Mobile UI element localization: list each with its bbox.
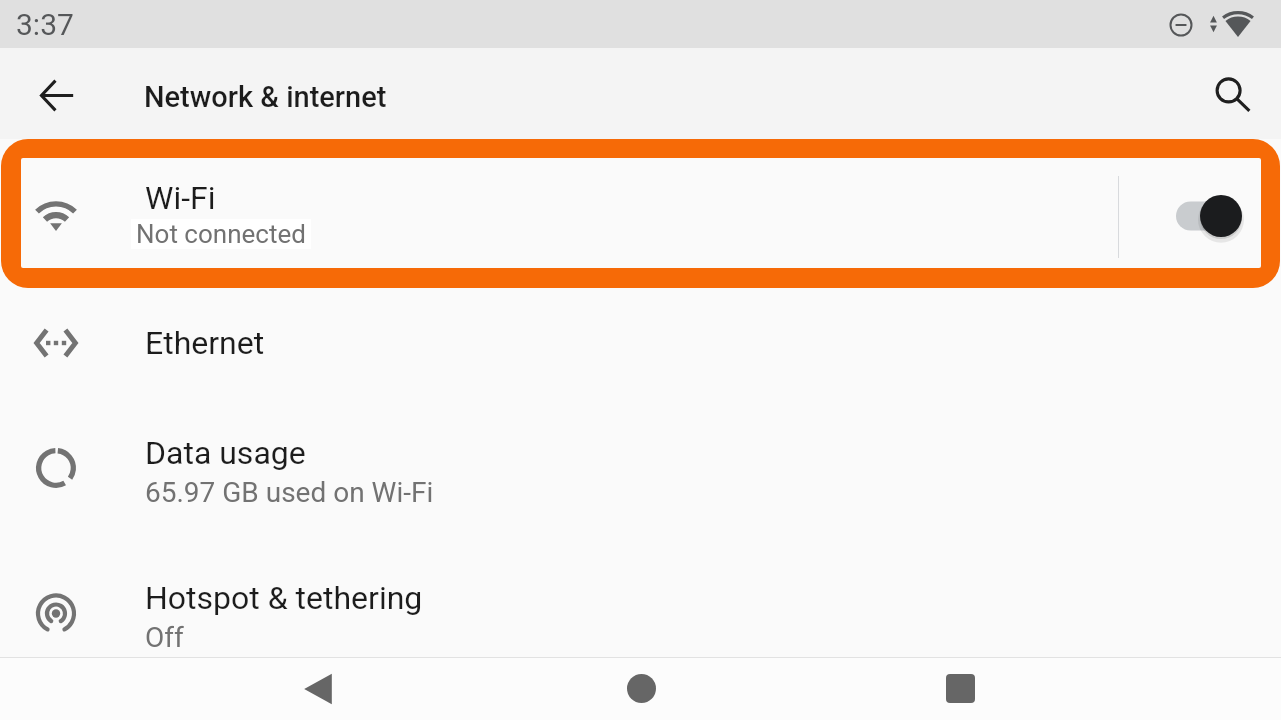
button[interactable]: Wi-Fi (21, 158, 1261, 268)
button[interactable]: Home (609, 657, 673, 720)
staticText: Off (145, 621, 184, 654)
staticText: Not connected (136, 219, 306, 249)
staticText: 65.97 GB used on Wi-Fi (145, 476, 434, 509)
button[interactable]: Recent apps (928, 657, 992, 720)
button[interactable]: Wi-Fi on (1119, 158, 1261, 268)
button[interactable]: Navigate up (24, 62, 88, 126)
staticText: 3:37 (16, 7, 74, 42)
button[interactable]: Search (1201, 62, 1265, 126)
staticText: Network & internet (144, 80, 387, 114)
button[interactable]: Data usage (0, 397, 1281, 545)
staticText: Wi-Fi (145, 179, 216, 217)
staticText: Hotspot & tethering (145, 579, 423, 617)
staticText: Data usage (145, 434, 306, 472)
button[interactable]: Ethernet (0, 288, 1281, 397)
staticText: Ethernet (145, 324, 265, 362)
button[interactable]: Back (287, 657, 351, 720)
button[interactable]: Hotspot & tethering (0, 545, 1281, 657)
